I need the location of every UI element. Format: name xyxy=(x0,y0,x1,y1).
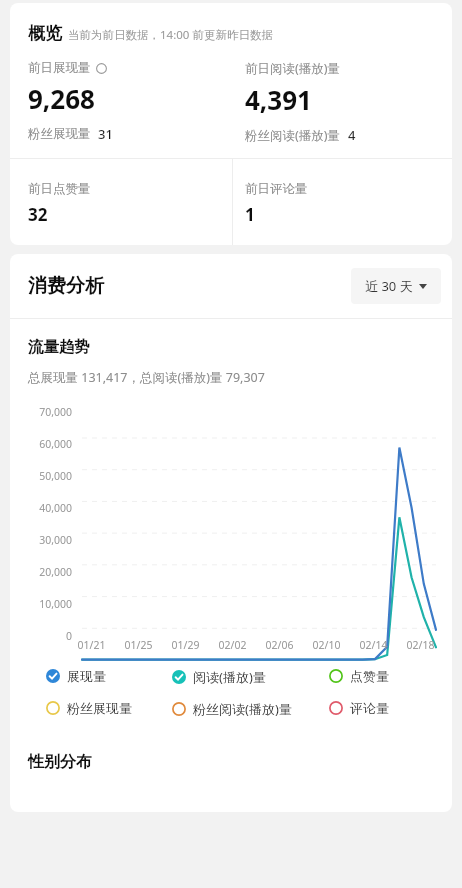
button[interactable]: 点赞量 xyxy=(329,668,442,684)
staticText: 前日评论量 xyxy=(245,181,308,197)
staticText: 前日展现量 xyxy=(28,60,91,76)
button[interactable]: 近 30 天 xyxy=(351,268,441,304)
staticText: 总展现量 131,417，总阅读(播放)量 79,307 xyxy=(28,369,265,386)
staticText: 0 xyxy=(16,629,72,641)
staticText: 70,000 xyxy=(16,405,72,419)
staticText: 40,000 xyxy=(16,501,72,515)
staticText: 粉丝展现量 xyxy=(28,126,91,142)
staticText: 9,268 xyxy=(28,81,95,116)
staticText: 31 xyxy=(98,125,113,143)
staticText: 02/10 xyxy=(303,638,350,652)
staticText: 前日点赞量 xyxy=(28,181,91,197)
staticText: 02/06 xyxy=(256,638,303,652)
staticText: 评论量 xyxy=(350,700,389,716)
staticText: 近 30 天 xyxy=(365,277,413,295)
staticText: 阅读(播放)量 xyxy=(193,668,266,686)
button[interactable]: 展现量 xyxy=(46,668,172,684)
staticText: 粉丝阅读(播放)量 xyxy=(245,127,341,144)
staticText: 01/21 xyxy=(68,638,115,652)
staticText: 02/14 xyxy=(350,638,397,652)
button[interactable]: 阅读(播放)量 xyxy=(172,668,329,686)
staticText: 流量趋势 xyxy=(28,337,90,357)
staticText: 50,000 xyxy=(16,469,72,483)
staticText: 4 xyxy=(348,126,356,144)
staticText: 02/18 xyxy=(397,638,444,652)
staticText: 性别分布 xyxy=(28,752,92,772)
staticText: 20,000 xyxy=(16,565,72,579)
staticText: 前日阅读(播放)量 xyxy=(245,60,341,77)
staticText: 消费分析 xyxy=(28,274,104,298)
button[interactable]: 评论量 xyxy=(329,700,442,716)
staticText: 粉丝阅读(播放)量 xyxy=(193,700,292,718)
button[interactable]: 粉丝阅读(播放)量 xyxy=(172,700,329,718)
staticText: 32 xyxy=(28,203,48,226)
staticText: 02/02 xyxy=(209,638,256,652)
button[interactable]: 粉丝展现量 xyxy=(46,700,172,716)
staticText: 01/29 xyxy=(162,638,209,652)
staticText: 30,000 xyxy=(16,533,72,547)
staticText: 概览 xyxy=(28,23,62,44)
staticText: 粉丝展现量 xyxy=(67,700,132,716)
staticText: 展现量 xyxy=(67,668,106,684)
staticText: 点赞量 xyxy=(350,668,389,684)
staticText: 当前为前日数据，14:00 前更新昨日数据 xyxy=(68,27,273,43)
staticText: 1 xyxy=(245,203,255,226)
staticText: 4,391 xyxy=(245,82,312,117)
staticText: 01/25 xyxy=(115,638,162,652)
staticText: 10,000 xyxy=(16,597,72,611)
staticText: 60,000 xyxy=(16,437,72,451)
